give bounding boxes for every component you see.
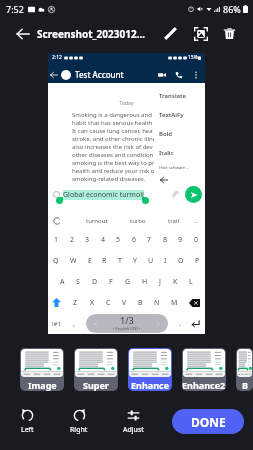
staticText: other diseases and condition [72, 151, 154, 159]
staticText: J [159, 277, 161, 287]
staticText: stroke, and other chronic illne [72, 135, 157, 143]
button[interactable]: Super [74, 348, 118, 391]
staticText: 1/3 [120, 314, 134, 326]
staticText: Bold [159, 130, 173, 138]
staticText: 8 [163, 235, 168, 245]
button[interactable]: Back [11, 22, 35, 46]
staticText: turnout [86, 217, 108, 225]
staticText: D [92, 277, 98, 287]
staticText: N [154, 298, 160, 308]
staticText: Today [48, 100, 205, 107]
staticText: B [138, 298, 143, 308]
staticText: Q [53, 256, 59, 266]
button[interactable]: Left [5, 409, 49, 435]
staticText: 9 [178, 235, 183, 245]
staticText: B [242, 379, 248, 391]
button[interactable]: Edit [159, 22, 182, 45]
staticText: 4 [101, 235, 106, 245]
staticText: Adjust [123, 425, 144, 435]
staticText: K [173, 277, 178, 287]
staticText: Left [21, 425, 34, 435]
staticText: Z [73, 298, 78, 308]
staticText: smoking is the best way to pr [72, 159, 155, 167]
staticText: smoking-related diseases. [72, 175, 146, 183]
staticText: 2:12 [52, 54, 62, 61]
staticText: O [178, 256, 184, 266]
staticText: I [164, 256, 167, 266]
staticText: S [76, 277, 80, 287]
staticText: Italic [159, 149, 174, 157]
staticText: 15% [188, 54, 198, 61]
button[interactable]: DONE [172, 409, 244, 434]
staticText: Y [133, 256, 137, 266]
staticText: habit that has serious health [72, 119, 153, 127]
staticText: 86% [223, 3, 241, 15]
staticText: 7:52 [6, 3, 24, 15]
staticText: . [179, 319, 181, 329]
staticText: • English (US) • [113, 326, 141, 331]
staticText: C [106, 298, 111, 308]
button[interactable]: Delete [218, 22, 241, 45]
staticText: Super [83, 379, 109, 391]
staticText: 1 [54, 235, 59, 245]
staticText: TextAiFy [159, 111, 184, 119]
button[interactable]: Enhance2 [182, 348, 226, 391]
staticText: V [122, 298, 127, 308]
staticText: trail [168, 217, 179, 225]
staticText: A [60, 277, 65, 287]
staticText: G [125, 277, 131, 287]
staticText: Smoking is a dangerous and [72, 111, 152, 119]
button[interactable]: Enhance [128, 348, 172, 391]
staticText: Screenshot_2023012... [37, 27, 146, 41]
staticText: Translate [159, 92, 187, 100]
staticText: 5 [116, 235, 121, 245]
staticText: F [109, 277, 113, 287]
staticText: Test Account [75, 69, 124, 80]
staticText: It can cause lung cancer, hea [72, 127, 153, 135]
staticText: E [88, 256, 92, 266]
staticText: T [118, 256, 122, 266]
staticText: ... [194, 217, 199, 225]
staticText: H [142, 277, 148, 287]
button[interactable]: B [236, 348, 253, 391]
staticText: also increases the risk of dev [72, 143, 153, 151]
staticText: 2 [70, 235, 75, 245]
staticText: 6 [132, 235, 137, 245]
staticText: 7 [147, 235, 152, 245]
staticText: W [70, 256, 77, 266]
staticText: Image [28, 379, 57, 391]
staticText: M [171, 298, 178, 308]
staticText: , [73, 319, 75, 329]
staticText: turbo [130, 217, 146, 225]
staticText: X [90, 298, 95, 308]
button[interactable]: Image [20, 348, 64, 391]
staticText: health and reduce your risk o [72, 167, 155, 175]
staticText: DONE [191, 414, 226, 430]
staticText: 0 [194, 235, 199, 245]
staticText: !#1 [52, 320, 61, 328]
staticText: Hide software ... [159, 165, 190, 170]
button[interactable]: Adjust [111, 409, 155, 435]
staticText: Global economic turmoil [63, 190, 144, 200]
staticText: P [195, 256, 200, 266]
button[interactable]: Crop image [189, 22, 212, 45]
staticText: 3 [85, 235, 90, 245]
staticText: L [189, 277, 193, 287]
staticText: R [102, 256, 107, 266]
staticText: Enhance [131, 379, 169, 391]
staticText: Enhance2 [182, 379, 226, 391]
staticText: U [148, 256, 154, 266]
staticText: Right [70, 425, 88, 435]
button[interactable]: Right [57, 409, 101, 435]
